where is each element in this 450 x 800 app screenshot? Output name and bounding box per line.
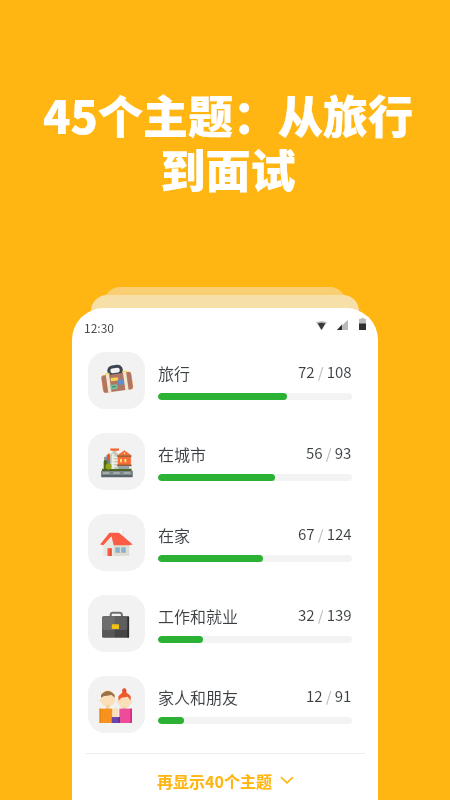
staticText: 再显示40个主题 [157,769,272,792]
staticText: 在家 [158,523,191,546]
staticText: 工作和就业 [158,604,239,627]
staticText: 家人和朋友 [158,685,239,708]
staticText: 45个主题：从旅行 到面试 [43,82,413,201]
staticText: 67 / 124 [298,523,352,545]
button[interactable]: 工作和就业 [72,583,378,664]
button[interactable]: 旅行 [72,340,378,421]
button[interactable]: 在城市 [72,421,378,502]
staticText: 12 / 91 [306,685,352,707]
staticText: 旅行 [158,361,191,384]
button[interactable]: 家人和朋友 [72,664,378,745]
staticText: 在城市 [158,442,207,465]
button[interactable]: 再显示40个主题 [72,754,378,800]
staticText: 32 / 139 [298,604,352,626]
staticText: 12:30 [84,319,114,336]
staticText: 72 / 108 [298,361,352,383]
button[interactable]: 在家 [72,502,378,583]
staticText: 56 / 93 [306,442,352,464]
